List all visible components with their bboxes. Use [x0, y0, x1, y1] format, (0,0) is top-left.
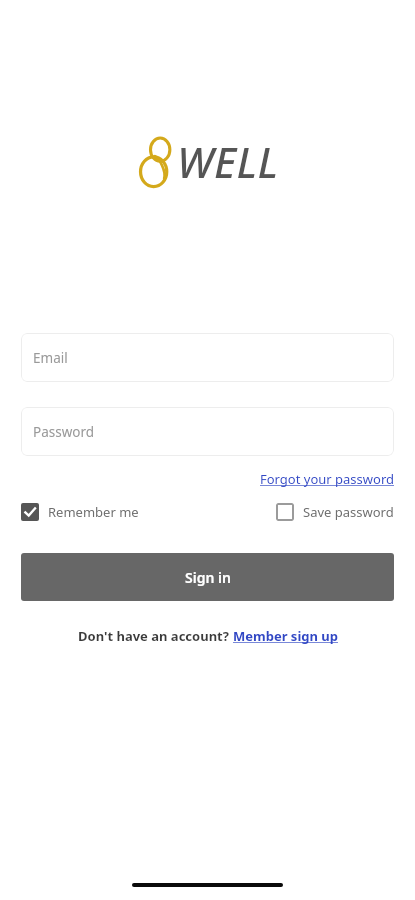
- staticText: Member sign up: [233, 627, 338, 645]
- button[interactable]: Member sign up: [233, 627, 338, 645]
- button[interactable]: Email: [21, 333, 394, 382]
- staticText: Remember me: [48, 503, 139, 521]
- staticText: Email: [33, 349, 68, 367]
- staticText: Password: [33, 423, 95, 441]
- staticText: Forgot your password: [260, 470, 394, 488]
- staticText: Don't have an account?: [78, 627, 233, 645]
- button[interactable]: Save password: [276, 503, 394, 521]
- button[interactable]: Forgot your password: [260, 470, 394, 488]
- button[interactable]: Password: [21, 407, 394, 456]
- button[interactable]: Sign in: [21, 553, 394, 601]
- staticText: WELL: [177, 133, 279, 190]
- staticText: Sign in: [185, 568, 231, 587]
- button[interactable]: Remember me: [21, 503, 139, 521]
- staticText: Save password: [303, 503, 394, 521]
